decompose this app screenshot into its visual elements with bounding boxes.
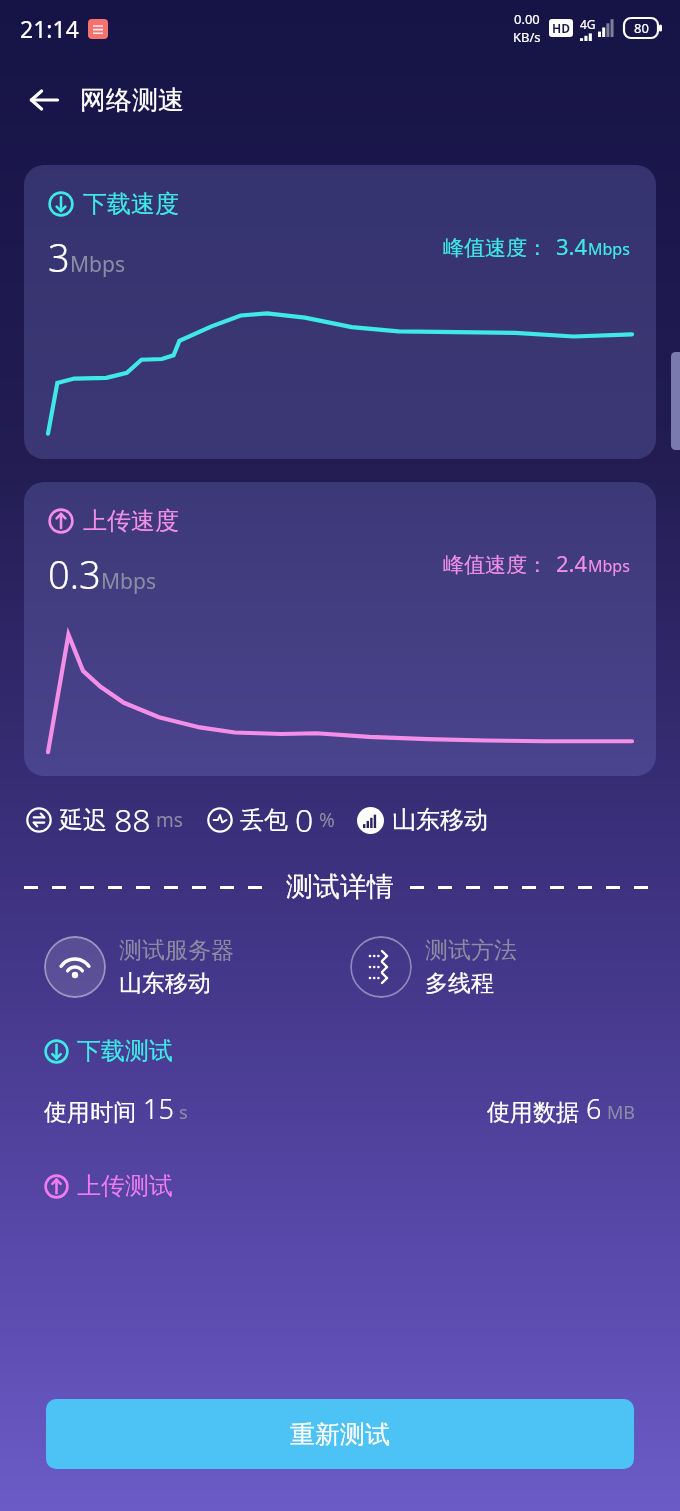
staticText: Mbps [70,250,125,279]
staticText: 延迟 [59,805,107,835]
button[interactable]: 丢包 [207,798,335,842]
staticText: 4G [580,16,596,32]
button[interactable]: 下载速度 [24,165,656,459]
staticText: 网络测速 [80,84,184,117]
staticText: 21:14 [20,13,79,44]
staticText: 测试详情 [286,870,394,904]
staticText: 80 [634,19,649,37]
button[interactable]: 测试服务器 [44,936,350,998]
staticText: 使用数据 [487,1098,579,1127]
staticText: KB/s [513,28,541,46]
staticText: Mbps [588,238,630,260]
staticText: 6 [586,1090,602,1127]
staticText: 0.00 [514,10,540,28]
staticText: 上传速度 [83,506,179,536]
staticText: s [179,1100,188,1125]
staticText: 0 [295,798,314,842]
button[interactable]: Back [16,72,72,128]
staticText: 下载测试 [77,1036,173,1066]
staticText: 峰值速度： [443,235,548,261]
staticText: 3 [48,231,70,283]
button[interactable]: 测试方法 [350,936,656,998]
staticText: 0.3 [48,548,101,600]
staticText: 重新测试 [290,1419,390,1450]
staticText: 山东移动 [119,969,211,998]
staticText: 3.4 [556,231,588,261]
staticText: MB [607,1100,636,1125]
staticText: 2.4 [556,548,588,578]
staticText: 丢包 [240,805,288,835]
staticText: 使用时间 [44,1098,136,1127]
staticText: 多线程 [425,969,494,998]
staticText: 上传测试 [77,1171,173,1201]
staticText: 峰值速度： [443,552,548,578]
staticText: 15 [143,1090,174,1127]
staticText: 下载速度 [83,189,179,219]
button[interactable]: 重新测试 [46,1399,634,1469]
staticText: HD [552,20,570,36]
button[interactable]: 下载测试 [44,1036,173,1066]
staticText: 88 [114,798,151,842]
staticText: ms [156,807,183,833]
staticText: Mbps [588,555,630,577]
staticText: 测试服务器 [119,936,234,965]
button[interactable]: 山东移动 [357,805,488,835]
staticText: Mbps [101,567,156,596]
button[interactable]: 上传速度 [24,482,656,776]
staticText: % [319,807,335,833]
staticText: 测试方法 [425,936,517,965]
button[interactable]: 延迟 [26,798,183,842]
button[interactable]: 上传测试 [44,1171,173,1201]
staticText: 山东移动 [392,805,488,835]
